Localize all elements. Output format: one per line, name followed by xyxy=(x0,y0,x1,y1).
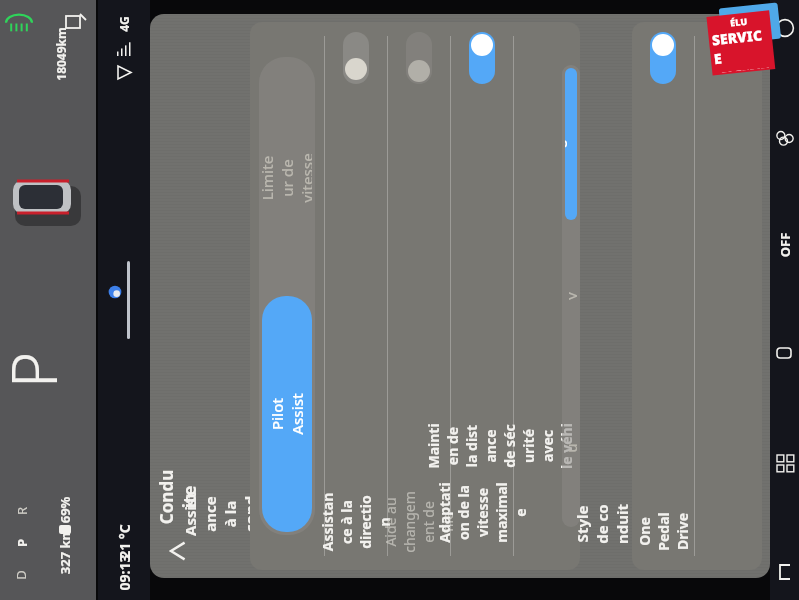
button[interactable]: Long xyxy=(565,68,577,220)
staticText: 09:13 xyxy=(114,554,133,590)
staticText: Moyen xyxy=(565,290,577,302)
staticText: Conduite xyxy=(155,469,201,525)
staticText: ÉLU xyxy=(730,15,748,28)
staticText: 21 °C xyxy=(115,524,134,559)
button[interactable]: Assistance à la direction xyxy=(341,32,371,88)
staticText: Style de conduite xyxy=(572,502,652,546)
button[interactable]: Defrost rear xyxy=(775,344,795,364)
button[interactable]: Fan xyxy=(775,127,795,147)
staticText: P xyxy=(12,538,30,547)
button[interactable]: Seat ventilation xyxy=(775,453,795,473)
staticText: One Pedal Drive xyxy=(634,500,691,562)
staticText: Long xyxy=(565,138,577,150)
staticText: 69% xyxy=(55,496,73,523)
staticText: Pilot Assist xyxy=(267,389,307,439)
staticText: Assistance à la conduite xyxy=(180,492,280,536)
staticText: Aide au changement de file xyxy=(381,491,457,553)
button[interactable]: Moyen xyxy=(565,220,577,372)
staticText: P xyxy=(0,351,74,388)
staticText: 4G xyxy=(116,16,132,32)
button[interactable]: One Pedal Drive xyxy=(648,32,678,88)
button[interactable]: Seat heating xyxy=(775,18,795,38)
staticText: Court xyxy=(565,442,577,454)
button[interactable]: Back xyxy=(167,540,189,562)
staticText: Limiteur de vitesse xyxy=(262,153,312,203)
button[interactable]: Assistance à la direction xyxy=(325,22,387,570)
button[interactable]: Limiteur de vitesse xyxy=(262,60,312,296)
button[interactable]: Court xyxy=(565,372,577,524)
staticText: Assistance à la direction xyxy=(318,491,394,553)
button[interactable]: Adaptation de la vitesse maximale xyxy=(467,32,497,88)
button[interactable]: Adaptation de la vitesse maximale xyxy=(451,22,513,570)
button[interactable]: One Pedal Drive xyxy=(632,22,694,570)
staticText: R xyxy=(12,506,30,515)
staticText: Maintien de la distance de sécurité avec… xyxy=(424,422,580,470)
staticText: 18049km xyxy=(53,27,69,81)
staticText: OFF xyxy=(775,232,793,257)
staticText: CLIENT xyxy=(718,63,770,73)
button[interactable]: Pilot Assist xyxy=(262,296,312,532)
button[interactable]: Aide au changement de file xyxy=(388,22,450,570)
staticText: D xyxy=(12,570,30,580)
staticText: 327 km xyxy=(55,527,73,574)
staticText: SERVICE xyxy=(711,25,772,68)
button[interactable]: Defrost front xyxy=(775,562,795,582)
staticText: Adaptation de la vitesse maximale xyxy=(434,481,529,543)
